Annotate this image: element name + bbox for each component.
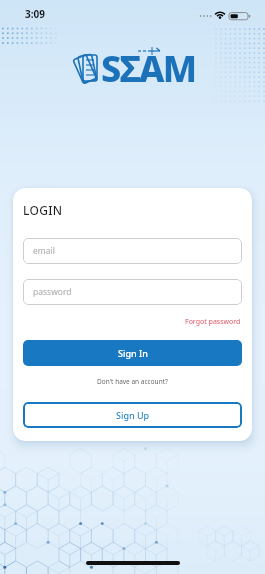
staticText: Don't have an account? (97, 377, 168, 386)
button[interactable]: email (23, 238, 242, 264)
staticText: 3:09 (25, 7, 45, 21)
button[interactable]: Sign Up (23, 402, 242, 428)
button[interactable]: Sign In (23, 340, 242, 366)
button[interactable]: password (23, 279, 242, 305)
button[interactable]: Forgot password (185, 317, 241, 327)
staticText: Sign In (118, 347, 148, 359)
staticText: LOGIN (23, 202, 63, 218)
staticText: SΣAM (101, 44, 196, 93)
staticText: password (33, 286, 72, 298)
staticText: Sign Up (116, 409, 150, 421)
staticText: email (33, 245, 55, 257)
